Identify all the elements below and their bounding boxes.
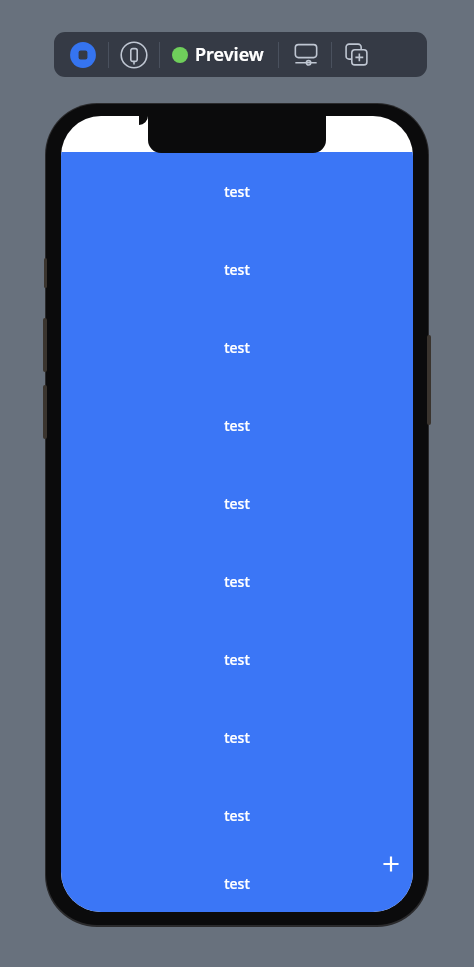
staticText: test: [224, 182, 250, 201]
staticText: test: [224, 494, 250, 513]
button[interactable]: Design mode: [66, 38, 100, 72]
staticText: test: [224, 874, 250, 893]
staticText: test: [224, 806, 250, 825]
staticText: Preview: [195, 42, 264, 67]
button[interactable]: test: [61, 152, 413, 230]
button[interactable]: test: [61, 230, 413, 308]
button[interactable]: Volume up: [43, 318, 47, 372]
button[interactable]: Display settings: [289, 38, 323, 72]
button[interactable]: Mute switch: [44, 258, 47, 288]
button[interactable]: test: [61, 542, 413, 620]
staticText: test: [224, 260, 250, 279]
button[interactable]: test: [61, 776, 413, 854]
button[interactable]: Power: [427, 335, 431, 425]
staticText: test: [224, 572, 250, 591]
button[interactable]: test: [61, 854, 413, 912]
button[interactable]: Preview: [172, 42, 264, 67]
button[interactable]: test: [61, 698, 413, 776]
button[interactable]: test: [61, 620, 413, 698]
button[interactable]: test: [61, 308, 413, 386]
button[interactable]: test: [61, 464, 413, 542]
staticText: test: [224, 338, 250, 357]
staticText: test: [224, 416, 250, 435]
staticText: test: [224, 728, 250, 747]
button[interactable]: Add preview: [340, 38, 374, 72]
staticText: test: [224, 650, 250, 669]
button[interactable]: Device settings: [117, 38, 151, 72]
button[interactable]: Add: [375, 848, 407, 880]
button[interactable]: test: [61, 386, 413, 464]
button[interactable]: Volume down: [43, 385, 47, 439]
